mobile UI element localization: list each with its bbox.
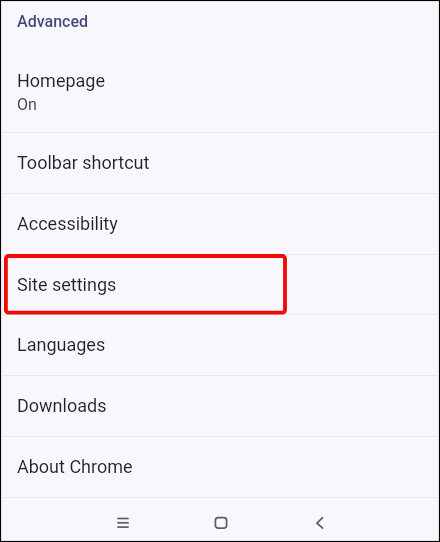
button[interactable]: Downloads <box>0 375 440 436</box>
button[interactable]: Toolbar shortcut <box>0 132 440 193</box>
button[interactable]: Homepage <box>0 44 440 132</box>
button[interactable]: Home <box>205 498 237 542</box>
staticText: Downloads <box>17 395 107 416</box>
staticText: Site settings <box>17 274 117 295</box>
button[interactable]: About Chrome <box>0 436 440 497</box>
button[interactable]: Back <box>304 498 336 542</box>
staticText: Homepage <box>17 70 105 91</box>
staticText: On <box>17 95 37 114</box>
button[interactable]: Site settings <box>0 254 440 314</box>
button[interactable]: Recent apps <box>107 498 139 542</box>
button[interactable]: Languages <box>0 314 440 375</box>
button[interactable]: Advanced <box>0 6 440 36</box>
button[interactable]: Accessibility <box>0 193 440 254</box>
staticText: Toolbar shortcut <box>17 152 150 173</box>
staticText: Accessibility <box>17 213 118 234</box>
staticText: Advanced <box>17 12 89 31</box>
staticText: About Chrome <box>17 456 133 477</box>
staticText: Languages <box>17 334 106 355</box>
